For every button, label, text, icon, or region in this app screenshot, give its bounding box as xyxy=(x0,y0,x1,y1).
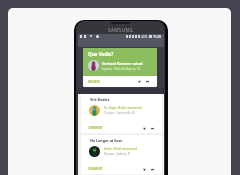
staticText: COMMENT xyxy=(88,167,103,171)
staticText: 11:29 xyxy=(153,35,162,39)
button[interactable]: COMMENT xyxy=(88,167,103,171)
button[interactable]: Vile Bodies xyxy=(81,94,162,133)
staticText: No Longer at Ease xyxy=(90,138,123,143)
button[interactable]: ANSWER xyxy=(88,80,100,84)
button[interactable]: Share xyxy=(145,79,150,84)
staticText: 16 years · Carmenville, SD xyxy=(104,111,136,115)
staticText: SAMSUNG xyxy=(108,27,134,33)
staticText: COMMENT xyxy=(88,126,103,130)
button[interactable]: Share xyxy=(150,126,155,131)
button[interactable]: Quo Vadis? xyxy=(83,48,157,87)
staticText: Dr. Kayla Nolke answered xyxy=(104,106,142,110)
button[interactable]: Share xyxy=(150,167,155,172)
button[interactable]: No Longer at Ease xyxy=(81,135,162,174)
staticText: Gerhard Kemmer asked xyxy=(102,61,143,66)
button[interactable]: Like xyxy=(142,126,147,131)
staticText: 44% xyxy=(141,35,148,39)
staticText: Quo Vadis? xyxy=(88,51,114,57)
staticText: ANSWER xyxy=(88,80,100,84)
button[interactable]: Like xyxy=(137,79,142,84)
staticText: 44 years · Joehurst, FL xyxy=(104,152,131,156)
staticText: 6 years · Port Goldsport, TX xyxy=(102,67,141,71)
staticText: Vile Bodies xyxy=(90,97,110,102)
button[interactable]: COMMENT xyxy=(88,126,103,130)
button[interactable]: Like xyxy=(142,167,147,172)
staticText: Aidan Vitoff answered xyxy=(104,147,137,151)
